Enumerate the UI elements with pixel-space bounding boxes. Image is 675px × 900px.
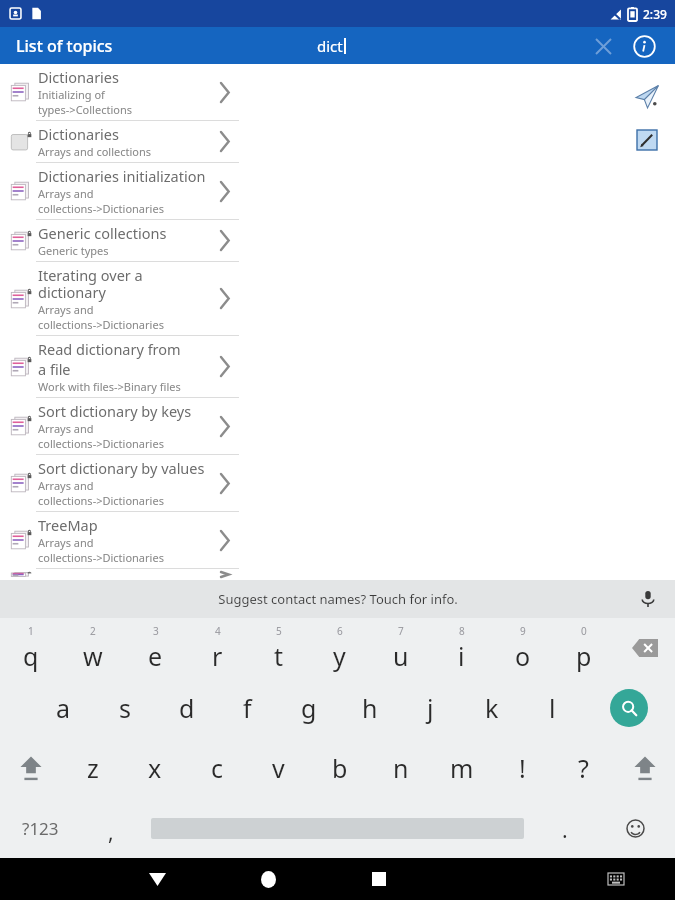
staticText: x xyxy=(148,751,162,785)
staticText: s xyxy=(119,691,131,725)
button[interactable]: Shift xyxy=(614,738,675,798)
staticText: Generic collections xyxy=(38,223,167,243)
button[interactable]: Suggest contact names? Touch for info. xyxy=(218,590,458,608)
button[interactable]: ? xyxy=(553,738,614,798)
staticText: v xyxy=(272,751,285,785)
staticText: 5 xyxy=(276,624,282,638)
button[interactable]: Read dictionary from xyxy=(0,336,245,398)
staticText: ? xyxy=(578,751,589,785)
staticText: 2 xyxy=(90,624,96,638)
staticText: y xyxy=(333,639,346,673)
button[interactable]: z xyxy=(62,738,124,798)
button[interactable]: Search xyxy=(583,678,675,738)
staticText: Arrays and xyxy=(38,478,94,493)
button[interactable]: g xyxy=(278,678,339,738)
button[interactable]: Dictionaries initialization xyxy=(0,163,245,220)
button[interactable]: 9 xyxy=(492,618,553,678)
staticText: 3 xyxy=(153,624,159,638)
staticText: e xyxy=(148,639,163,673)
button[interactable]: 3 xyxy=(124,618,186,678)
button[interactable]: Clear search xyxy=(587,30,619,62)
button[interactable]: Sort dictionary by values xyxy=(0,455,245,512)
staticText: r xyxy=(212,639,223,673)
staticText: f xyxy=(243,691,252,725)
staticText: w xyxy=(83,639,103,673)
button[interactable]: a xyxy=(32,678,94,738)
staticText: Read dictionary from xyxy=(38,339,181,359)
staticText: Arrays and xyxy=(38,421,94,436)
button[interactable]: b xyxy=(309,738,370,798)
button[interactable]: 2 xyxy=(62,618,124,678)
staticText: 7 xyxy=(398,624,404,638)
staticText: 8 xyxy=(459,624,465,638)
staticText: c xyxy=(211,751,224,785)
button[interactable]: 8 xyxy=(431,618,492,678)
button[interactable]: 7 xyxy=(370,618,431,678)
staticText: collections->Dictionaries xyxy=(38,493,164,508)
staticText: ?123 xyxy=(22,817,59,840)
staticText: o xyxy=(515,639,531,673)
staticText: Initializing of xyxy=(38,87,105,102)
staticText: p xyxy=(576,639,592,673)
button[interactable]: TreeMap xyxy=(0,512,245,569)
staticText: j xyxy=(427,691,434,725)
staticText: List of topics xyxy=(16,35,113,57)
button[interactable]: j xyxy=(400,678,461,738)
button[interactable]: 1 xyxy=(0,618,62,678)
staticText: Generic types xyxy=(38,243,109,258)
staticText: ! xyxy=(519,751,526,785)
button[interactable]: ! xyxy=(492,738,553,798)
button[interactable]: Emoji xyxy=(595,798,675,858)
button[interactable]: l xyxy=(522,678,583,738)
button[interactable]: Send xyxy=(627,76,667,116)
button[interactable]: v xyxy=(248,738,309,798)
staticText: collections->Dictionaries xyxy=(38,436,164,451)
button[interactable]: 0 xyxy=(553,618,614,678)
button[interactable]: 6 xyxy=(309,618,370,678)
button[interactable]: Hide keyboard xyxy=(120,858,194,900)
staticText: h xyxy=(362,691,378,725)
staticText: z xyxy=(87,751,99,785)
button[interactable]: Iterating over a dictionary xyxy=(0,262,245,336)
staticText: 0 xyxy=(581,624,587,638)
button[interactable]: Info xyxy=(627,29,661,63)
button[interactable]: c xyxy=(186,738,248,798)
button[interactable]: s xyxy=(94,678,156,738)
button[interactable]: h xyxy=(339,678,400,738)
staticText: types->Collections xyxy=(38,102,132,117)
button[interactable]: d xyxy=(156,678,217,738)
staticText: 4 xyxy=(215,624,221,638)
staticText: Arrays and xyxy=(38,535,94,550)
button[interactable]: k xyxy=(461,678,522,738)
button[interactable]: f xyxy=(217,678,278,738)
button[interactable]: Dictionaries xyxy=(0,64,245,121)
button[interactable]: Backspace xyxy=(614,618,675,678)
button[interactable]: m xyxy=(431,738,492,798)
staticText: collections->Dictionaries xyxy=(38,317,164,332)
button[interactable]: Edit xyxy=(627,120,667,160)
button[interactable]: Home xyxy=(231,858,305,900)
staticText: 9 xyxy=(520,624,526,638)
button[interactable]: Write dictionary to a file xyxy=(0,569,245,580)
button[interactable]: . xyxy=(534,798,595,858)
button[interactable]: , xyxy=(80,798,141,858)
staticText: Arrays and xyxy=(38,186,94,201)
button[interactable]: Shift xyxy=(0,738,62,798)
button[interactable]: Recent apps xyxy=(342,858,416,900)
button[interactable]: x xyxy=(124,738,186,798)
staticText: t xyxy=(274,639,284,673)
staticText: d xyxy=(179,691,195,725)
button[interactable]: Voice input xyxy=(633,584,663,614)
button[interactable]: Dictionaries xyxy=(0,121,245,163)
button[interactable]: n xyxy=(370,738,431,798)
button[interactable]: Switch keyboard xyxy=(579,858,653,900)
staticText: a xyxy=(56,691,71,725)
button[interactable]: Space xyxy=(141,798,534,858)
button[interactable]: Sort dictionary by keys xyxy=(0,398,245,455)
button[interactable]: 4 xyxy=(186,618,248,678)
button[interactable]: ?123 xyxy=(0,798,80,858)
button[interactable]: Generic collections xyxy=(0,220,245,262)
button[interactable]: 5 xyxy=(248,618,309,678)
staticText: dict xyxy=(317,36,343,56)
staticText: 1 xyxy=(28,624,34,638)
